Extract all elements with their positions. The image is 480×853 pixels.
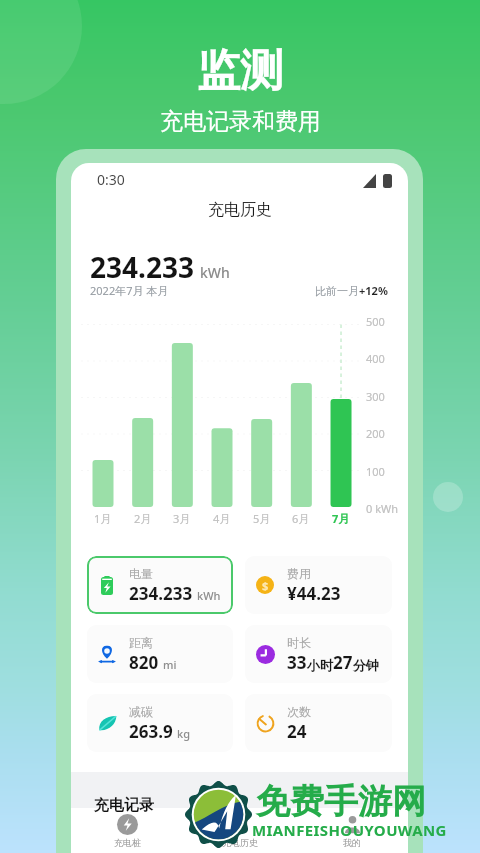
staticText: 减碳 — [129, 704, 153, 719]
staticText: $ — [262, 578, 269, 593]
staticText: +12% — [359, 283, 388, 298]
staticText: 费用 — [287, 566, 311, 581]
button[interactable]: 减碳 — [87, 694, 233, 752]
staticText: 电量 — [129, 566, 153, 581]
staticText: 充电历史 — [222, 837, 258, 848]
staticText: 234.233 — [90, 248, 194, 286]
staticText: 263.9 — [129, 720, 173, 743]
staticText: MIANFEISHOUYOUWANG — [252, 820, 447, 840]
staticText: 6月 — [292, 511, 310, 526]
staticText: 分钟 — [353, 657, 379, 673]
staticText: ¥44.23 — [287, 582, 341, 605]
staticText: 234.233 — [129, 582, 193, 605]
staticText: 3月 — [173, 511, 191, 526]
button[interactable]: 时长 — [245, 625, 392, 683]
staticText: 7月 — [332, 511, 350, 526]
staticText: 小时 — [307, 657, 333, 673]
staticText: 0:30 — [97, 170, 125, 189]
staticText: 2022年7月 本月 — [90, 283, 169, 298]
staticText: 充电桩 — [114, 837, 141, 848]
button[interactable]: 我的 — [296, 809, 408, 853]
staticText: 距离 — [129, 635, 153, 650]
staticText: 500 — [366, 314, 385, 329]
button[interactable]: 距离 — [87, 625, 233, 683]
staticText: 400 — [366, 351, 385, 366]
staticText: 27 — [333, 651, 353, 674]
staticText: kWh — [200, 263, 230, 282]
button[interactable]: 充电历史 — [184, 809, 296, 853]
staticText: 2月 — [134, 511, 152, 526]
staticText: 比前一月 — [315, 284, 359, 298]
staticText: 1月 — [94, 511, 112, 526]
button[interactable]: 充电桩 — [71, 809, 184, 853]
staticText: kWh — [197, 588, 221, 603]
staticText: 200 — [366, 426, 385, 441]
staticText: 次数 — [287, 704, 311, 719]
staticText: 充电记录 — [94, 796, 154, 815]
staticText: 300 — [366, 389, 385, 404]
staticText: 33 — [287, 651, 307, 674]
button[interactable]: 电量 — [87, 556, 233, 614]
staticText: 24 — [287, 720, 307, 743]
staticText: mi — [163, 657, 177, 672]
staticText: kg — [177, 726, 190, 741]
staticText: 充电记录和费用 — [160, 107, 321, 136]
staticText: 4月 — [213, 511, 231, 526]
staticText: 我的 — [343, 837, 361, 848]
staticText: 时长 — [287, 635, 311, 650]
staticText: 充电历史 — [208, 200, 272, 220]
button[interactable]: 次数 — [245, 694, 392, 752]
button[interactable]: $ — [245, 556, 392, 614]
staticText: 100 — [366, 464, 385, 479]
staticText: 监测 — [197, 44, 283, 98]
staticText: 820 — [129, 651, 159, 674]
staticText: 5月 — [253, 511, 271, 526]
staticText: 免费手游网 — [256, 780, 426, 823]
staticText: 0 kWh — [366, 501, 399, 516]
